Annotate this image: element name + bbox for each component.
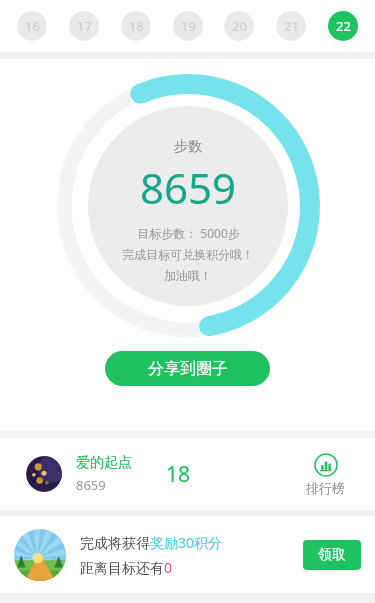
staticText: 步数 bbox=[174, 138, 202, 156]
staticText: 排行榜 bbox=[306, 480, 345, 496]
button[interactable]: 19 bbox=[173, 11, 203, 41]
button[interactable]: 18 bbox=[121, 11, 151, 41]
staticText: 领取 bbox=[318, 546, 346, 564]
staticText: 21 bbox=[284, 17, 299, 35]
staticText: 加油哦！ bbox=[164, 268, 212, 283]
button[interactable]: 16 bbox=[17, 11, 47, 41]
button[interactable]: 排行榜 bbox=[306, 453, 345, 496]
button[interactable]: 20 bbox=[224, 11, 254, 41]
button[interactable]: 22 bbox=[328, 11, 358, 41]
staticText: 目标步数： 5000步 bbox=[137, 225, 240, 241]
button[interactable]: 领取 bbox=[303, 540, 361, 570]
staticText: 19 bbox=[181, 17, 196, 35]
staticText: 完成目标可兑换积分哦！ bbox=[122, 247, 254, 262]
staticText: 分享到圈子 bbox=[148, 359, 228, 379]
staticText: 8659 bbox=[140, 159, 237, 216]
staticText: 18 bbox=[166, 460, 191, 489]
staticText: 16 bbox=[25, 17, 40, 35]
staticText: 距离目标还有0 bbox=[80, 558, 173, 577]
staticText: 22 bbox=[336, 17, 351, 35]
staticText: 爱的起点 bbox=[76, 454, 132, 472]
staticText: 20 bbox=[232, 17, 247, 35]
staticText: 8659 bbox=[76, 476, 106, 494]
staticText: 18 bbox=[129, 17, 144, 35]
button[interactable]: 21 bbox=[276, 11, 306, 41]
staticText: 完成将获得奖励30积分 bbox=[80, 533, 223, 552]
staticText: 17 bbox=[77, 17, 92, 35]
button[interactable]: 爱的起点 bbox=[0, 438, 375, 510]
button[interactable]: 17 bbox=[69, 11, 99, 41]
button[interactable]: 分享到圈子 bbox=[105, 351, 270, 386]
